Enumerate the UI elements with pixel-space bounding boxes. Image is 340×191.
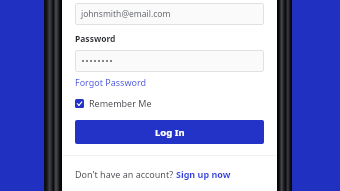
button[interactable]: Don't have an account? bbox=[75, 168, 231, 180]
button[interactable]: Remember Me bbox=[75, 97, 152, 109]
button[interactable]: Forgot Password bbox=[75, 76, 147, 88]
staticText: Sign up now bbox=[176, 168, 231, 180]
staticText: Remember Me bbox=[89, 97, 152, 109]
staticText: johnsmith@email.com bbox=[81, 8, 171, 20]
staticText: Forgot Password bbox=[75, 76, 147, 88]
button[interactable]: johnsmith@email.com bbox=[75, 3, 264, 25]
staticText: Don't have an account? bbox=[75, 168, 176, 180]
button[interactable] bbox=[75, 50, 264, 72]
staticText: Log In bbox=[155, 126, 185, 139]
staticText: Password bbox=[75, 33, 116, 45]
button[interactable]: Log In bbox=[75, 120, 264, 144]
